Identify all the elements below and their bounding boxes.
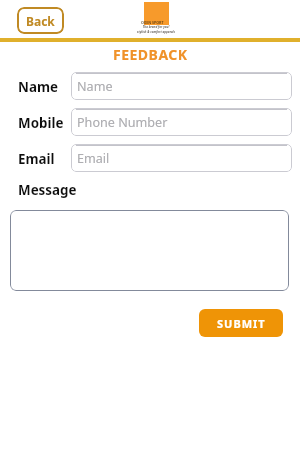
staticText: Phone Number xyxy=(77,114,168,131)
staticText: OXEN SPORT xyxy=(141,20,164,25)
staticText: The brand for you! xyxy=(116,25,196,29)
button[interactable]: Message xyxy=(10,210,289,291)
staticText: Email xyxy=(77,150,110,167)
staticText: FEEDBACK xyxy=(113,45,188,64)
button[interactable]: Phone Number xyxy=(71,108,292,136)
staticText: Name xyxy=(77,78,113,95)
staticText: Mobile xyxy=(18,114,64,132)
button[interactable]: Back xyxy=(17,7,64,34)
staticText: Message xyxy=(18,181,77,199)
button[interactable]: Name xyxy=(71,72,292,100)
staticText: stylish & comfort apparels xyxy=(116,30,196,34)
button[interactable]: SUBMIT xyxy=(199,309,283,337)
button[interactable]: Email xyxy=(71,144,292,172)
staticText: SUBMIT xyxy=(217,316,266,331)
staticText: Name xyxy=(18,78,58,96)
staticText: Email xyxy=(18,150,55,168)
staticText: Back xyxy=(26,13,55,29)
